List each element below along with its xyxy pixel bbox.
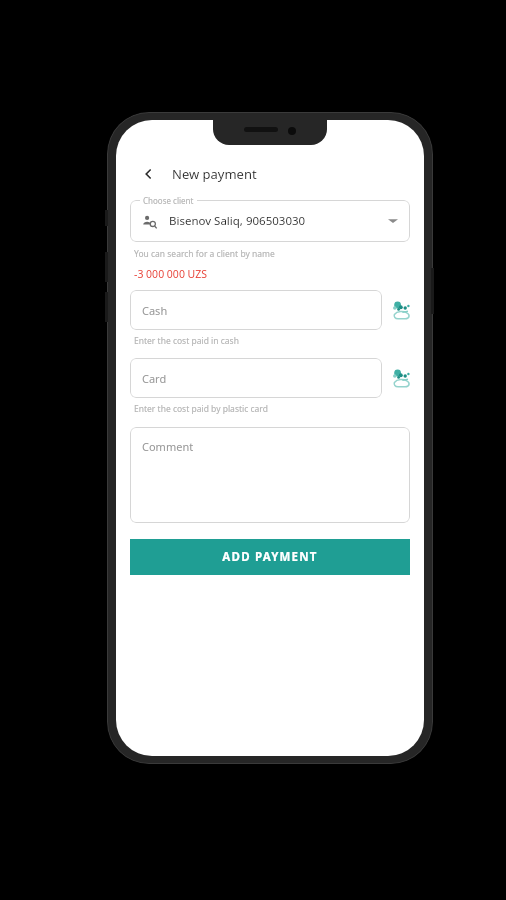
staticText: Card [142,371,167,386]
staticText: New payment [172,165,257,183]
button[interactable]: Cash [130,290,382,330]
button[interactable]: Back [138,163,160,185]
staticText: You can search for a client by name [134,248,275,260]
staticText: Choose client [143,195,194,206]
button[interactable]: Pick amount [390,366,414,390]
button[interactable]: Card [130,358,382,398]
staticText: Enter the cost paid by plastic card [134,403,268,415]
staticText: Cash [142,303,168,318]
button[interactable]: Comment [130,427,410,523]
button[interactable]: Bisenov Saliq, 906503030 [130,200,410,242]
staticText: -3 000 000 UZS [134,267,208,281]
staticText: Enter the cost paid in cash [134,335,239,347]
button[interactable]: ADD PAYMENT [130,539,410,575]
staticText: ADD PAYMENT [222,549,318,565]
staticText: Bisenov Saliq, 906503030 [169,213,306,229]
staticText: Comment [142,439,194,454]
button[interactable]: Pick amount [390,298,414,322]
